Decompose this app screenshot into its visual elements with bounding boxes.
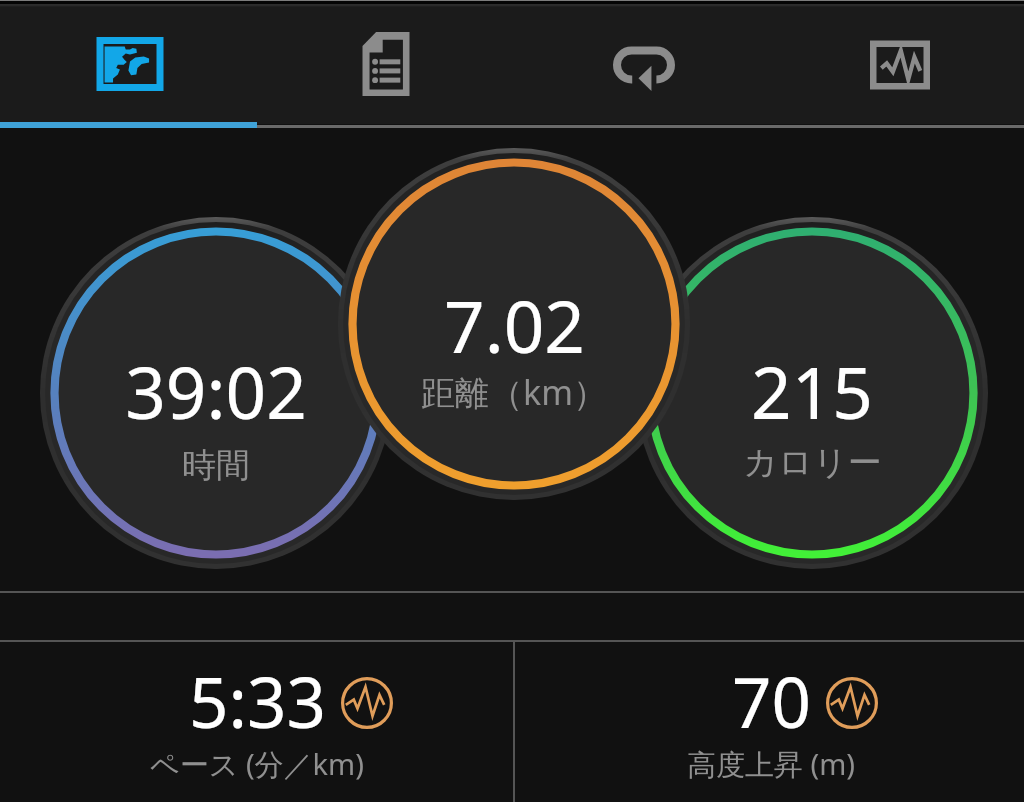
button[interactable]: Calories 215	[636, 217, 988, 569]
staticText: 215	[751, 343, 873, 440]
staticText: 5:33	[189, 654, 326, 748]
staticText: ペース (分／km)	[150, 744, 364, 784]
staticText: 距離（km）	[421, 369, 607, 415]
button[interactable]: Time 39:02	[40, 217, 392, 569]
staticText: カロリー	[743, 441, 882, 484]
staticText: 39:02	[125, 343, 307, 440]
button[interactable]: Graphs	[768, 0, 1024, 124]
staticText: 時間	[182, 444, 250, 487]
staticText: 7.02	[444, 277, 585, 374]
staticText: 70	[732, 654, 811, 748]
button[interactable]: Map	[0, 0, 256, 124]
button[interactable]: Laps	[512, 0, 768, 124]
button[interactable]: Pace 5:33 per km	[1, 643, 513, 802]
button[interactable]: Distance 7.02 km	[338, 148, 690, 500]
button[interactable]: Lap list	[256, 0, 512, 124]
staticText: 高度上昇 (m)	[687, 744, 856, 784]
button[interactable]: Elevation gain 70 m	[518, 643, 1024, 802]
